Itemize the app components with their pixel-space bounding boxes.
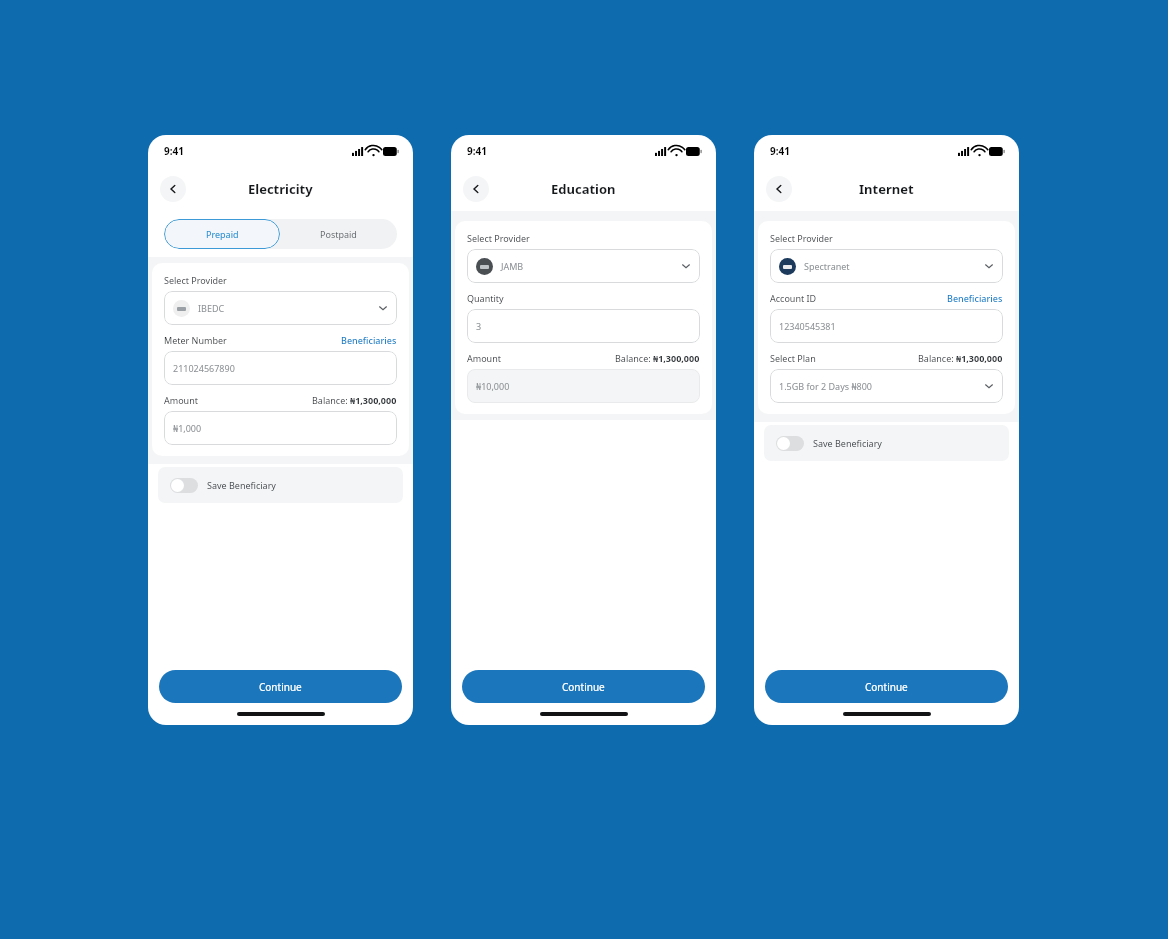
- staticText: Balance:: [312, 394, 350, 406]
- button[interactable]: Beneficiaries: [947, 292, 1003, 304]
- button[interactable]: 1.5GB for 2 Days ₦800: [770, 369, 1003, 403]
- staticText: ₦10,000: [476, 380, 510, 392]
- staticText: ₦1,300,000: [350, 394, 397, 406]
- staticText: Save Beneficiary: [207, 479, 276, 491]
- staticText: ₦1,000: [173, 422, 202, 434]
- button[interactable]: ₦10,000: [467, 369, 700, 403]
- button[interactable]: JAMB: [467, 249, 700, 283]
- staticText: 9:41: [164, 144, 184, 158]
- staticText: Continue: [865, 680, 908, 694]
- button[interactable]: 12340545381: [770, 309, 1003, 343]
- staticText: Balance:: [918, 352, 956, 364]
- staticText: 9:41: [467, 144, 487, 158]
- staticText: Amount: [164, 394, 198, 406]
- button[interactable]: Continue: [765, 670, 1008, 703]
- staticText: ₦1,300,000: [956, 352, 1003, 364]
- staticText: Meter Number: [164, 334, 227, 346]
- staticText: Account ID: [770, 292, 817, 304]
- staticText: 1.5GB for 2 Days ₦800: [779, 380, 872, 392]
- staticText: Select Provider: [770, 232, 833, 244]
- staticText: Beneficiaries: [947, 292, 1003, 304]
- staticText: 12340545381: [779, 320, 836, 332]
- staticText: Electricity: [248, 180, 313, 198]
- staticText: Save Beneficiary: [813, 437, 882, 449]
- staticText: Internet: [859, 180, 914, 198]
- staticText: Quantity: [467, 292, 504, 304]
- button[interactable]: 211024567890: [164, 351, 397, 385]
- staticText: 3: [476, 320, 482, 332]
- staticText: Spectranet: [804, 260, 850, 272]
- button[interactable]: Back: [160, 176, 186, 202]
- staticText: Prepaid: [206, 228, 239, 240]
- staticText: Continue: [562, 680, 605, 694]
- staticText: 211024567890: [173, 362, 235, 374]
- button[interactable]: Beneficiaries: [341, 334, 397, 346]
- button[interactable]: Save Beneficiary: [764, 425, 1009, 461]
- button[interactable]: Continue: [159, 670, 402, 703]
- button[interactable]: Save Beneficiary: [158, 467, 403, 503]
- staticText: Continue: [259, 680, 302, 694]
- button[interactable]: ₦1,000: [164, 411, 397, 445]
- staticText: ₦1,300,000: [653, 352, 700, 364]
- button[interactable]: Spectranet: [770, 249, 1003, 283]
- button[interactable]: Postpaid: [280, 219, 397, 249]
- staticText: Select Provider: [164, 274, 227, 286]
- button[interactable]: Continue: [462, 670, 705, 703]
- staticText: Education: [551, 180, 616, 198]
- staticText: Select Provider: [467, 232, 530, 244]
- staticText: Beneficiaries: [341, 334, 397, 346]
- staticText: IBEDC: [198, 302, 225, 314]
- button[interactable]: IBEDC: [164, 291, 397, 325]
- button[interactable]: Back: [463, 176, 489, 202]
- staticText: Postpaid: [320, 228, 357, 240]
- staticText: Balance:: [615, 352, 653, 364]
- button[interactable]: 3: [467, 309, 700, 343]
- staticText: Select Plan: [770, 352, 816, 364]
- staticText: Amount: [467, 352, 501, 364]
- button[interactable]: Prepaid: [164, 219, 280, 249]
- button[interactable]: Back: [766, 176, 792, 202]
- staticText: 9:41: [770, 144, 790, 158]
- staticText: JAMB: [501, 260, 524, 272]
